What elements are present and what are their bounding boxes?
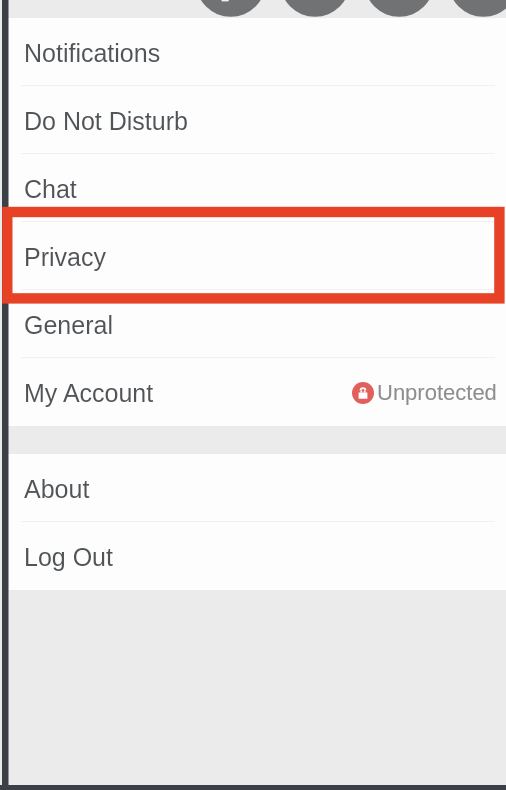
other: Contact avatars — [0, 0, 506, 18]
button[interactable]: Notifications — [0, 18, 506, 86]
button[interactable]: Log Out — [0, 522, 506, 590]
staticText: Unprotected — [377, 380, 497, 405]
staticText: General — [24, 311, 113, 339]
staticText: Notifications — [24, 39, 161, 67]
button[interactable]: My Account — [0, 358, 506, 426]
staticText: Do Not Disturb — [24, 107, 188, 135]
staticText: About — [24, 475, 90, 503]
staticText: Privacy — [24, 243, 106, 271]
staticText: Log Out — [24, 543, 113, 571]
button[interactable]: Privacy — [0, 222, 506, 290]
staticText: Chat — [24, 175, 77, 203]
button[interactable]: Do Not Disturb — [0, 86, 506, 154]
button[interactable]: About — [0, 454, 506, 522]
staticText: My Account — [24, 379, 154, 407]
button[interactable]: General — [0, 290, 506, 358]
button[interactable]: Chat — [0, 154, 506, 222]
other: Account is unprotected — [352, 382, 374, 404]
